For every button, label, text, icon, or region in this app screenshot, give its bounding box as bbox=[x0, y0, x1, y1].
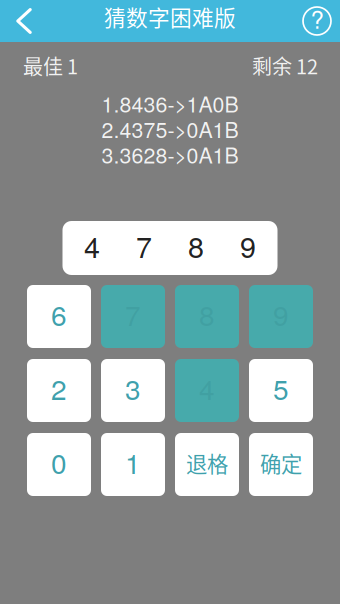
button[interactable]: 5 bbox=[249, 359, 313, 422]
staticText: 1 bbox=[125, 442, 141, 482]
button[interactable]: 9 bbox=[249, 285, 313, 348]
staticText: ? bbox=[310, 1, 323, 36]
staticText: 2 bbox=[51, 368, 67, 408]
button[interactable]: 6 bbox=[27, 285, 91, 348]
button[interactable]: Help bbox=[294, 0, 340, 42]
staticText: 确定 bbox=[260, 448, 302, 478]
button[interactable]: 4 bbox=[175, 359, 239, 422]
button[interactable]: 退格 bbox=[175, 433, 239, 496]
staticText: 最佳 1 bbox=[23, 51, 78, 80]
button[interactable]: 0 bbox=[27, 433, 91, 496]
button[interactable]: 7 bbox=[101, 285, 165, 348]
staticText: 8 bbox=[188, 225, 204, 266]
staticText: 剩余 12 bbox=[252, 51, 318, 80]
staticText: 4 bbox=[199, 368, 215, 408]
staticText: 2.4375->0A1B bbox=[101, 113, 238, 144]
staticText: 9 bbox=[273, 294, 289, 334]
button[interactable]: 3 bbox=[101, 359, 165, 422]
staticText: 3.3628->0A1B bbox=[101, 139, 238, 170]
button[interactable]: 确定 bbox=[249, 433, 313, 496]
staticText: 5 bbox=[273, 368, 289, 408]
staticText: 猜数字困难版 bbox=[104, 1, 236, 32]
staticText: 8 bbox=[199, 294, 215, 334]
staticText: 6 bbox=[51, 294, 67, 334]
staticText: 7 bbox=[136, 225, 152, 266]
button[interactable]: 2 bbox=[27, 359, 91, 422]
button[interactable]: 1 bbox=[101, 433, 165, 496]
staticText: 4 bbox=[84, 225, 100, 266]
staticText: 0 bbox=[51, 442, 67, 482]
staticText: 退格 bbox=[186, 448, 228, 478]
button[interactable]: 8 bbox=[175, 285, 239, 348]
staticText: 9 bbox=[240, 225, 256, 266]
button[interactable]: Back bbox=[0, 0, 48, 42]
staticText: 3 bbox=[125, 368, 141, 408]
staticText: 1.8436->1A0B bbox=[101, 88, 238, 118]
